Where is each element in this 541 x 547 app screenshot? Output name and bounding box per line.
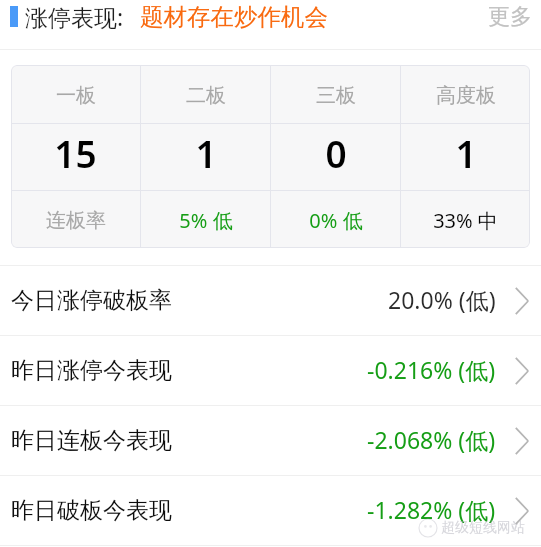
staticText: 二板 (186, 83, 226, 108)
button[interactable]: 连板率 (11, 191, 140, 248)
button[interactable]: 三板 (271, 65, 400, 123)
staticText: 33% 中 (433, 207, 498, 234)
staticText: 昨日涨停今表现 (11, 356, 172, 385)
staticText: 0 (325, 128, 347, 178)
staticText: 连板率 (46, 208, 106, 233)
staticText: 20.0% (低) (388, 284, 496, 315)
staticText: -1.282% (低) (367, 494, 496, 525)
staticText: -2.068% (低) (367, 424, 496, 455)
staticText: 题材存在炒作机会 (140, 2, 328, 32)
button[interactable]: 更多 (488, 0, 532, 33)
staticText: 0% 低 (309, 207, 363, 234)
button[interactable]: 0 (271, 124, 400, 190)
staticText: -0.216% (低) (367, 354, 496, 385)
staticText: 昨日连板今表现 (11, 426, 172, 455)
staticText: 今日涨停破板率 (11, 286, 172, 315)
button[interactable]: 15 (11, 124, 140, 190)
staticText: 15 (54, 128, 97, 178)
staticText: 更多 (488, 3, 532, 31)
other: 查看详情 (515, 287, 529, 315)
button[interactable]: 涨停表现: (0, 0, 541, 33)
staticText: 1 (195, 128, 217, 178)
staticText: 超级短线网站 (441, 519, 525, 537)
other: 查看详情 (515, 427, 529, 455)
staticText: 1 (455, 128, 477, 178)
staticText: 一板 (56, 83, 96, 108)
button[interactable]: 昨日涨停今表现 (0, 336, 541, 405)
button[interactable]: 一板 (11, 65, 140, 123)
staticText: 涨停表现: (25, 1, 124, 32)
button[interactable]: 33% 中 (401, 191, 530, 248)
button[interactable]: 1 (401, 124, 530, 190)
button[interactable]: 高度板 (401, 65, 530, 123)
button[interactable]: 0% 低 (271, 191, 400, 248)
staticText: 高度板 (436, 83, 496, 108)
staticText: 三板 (316, 83, 356, 108)
button[interactable]: 昨日连板今表现 (0, 406, 541, 475)
button[interactable]: 二板 (141, 65, 270, 123)
staticText: 5% 低 (179, 207, 233, 234)
button[interactable]: 5% 低 (141, 191, 270, 248)
other: 查看详情 (515, 357, 529, 385)
other: 查看详情 (515, 497, 529, 525)
button[interactable]: 昨日破板今表现 (0, 476, 541, 545)
staticText: 昨日破板今表现 (11, 496, 172, 525)
button[interactable]: 今日涨停破板率 (0, 266, 541, 335)
button[interactable]: 1 (141, 124, 270, 190)
